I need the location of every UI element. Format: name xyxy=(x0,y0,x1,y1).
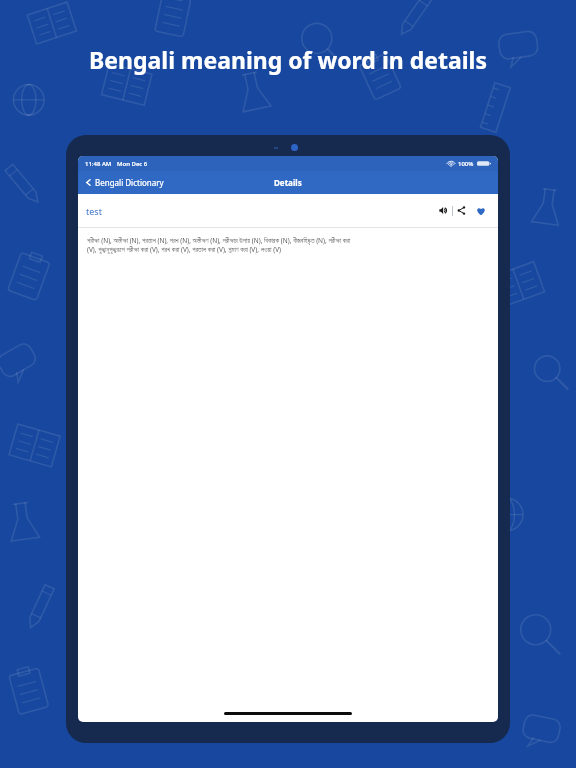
button[interactable]: Pronounce xyxy=(435,202,452,219)
staticText: Bengali Dictionary xyxy=(95,177,164,188)
staticText: Mon Dec 6 xyxy=(117,160,148,168)
staticText: 100% xyxy=(458,160,474,168)
staticText: (V), পুঙ্খানুপুঙ্খরূপে পরীক্ষা করা (V), … xyxy=(87,245,281,254)
staticText: পরীক্ষা (N), অভীক্ষা (N), পরতাল (N), পরখ… xyxy=(87,236,351,245)
staticText: test xyxy=(86,205,102,217)
button[interactable]: Favorite xyxy=(472,202,490,220)
button[interactable]: Bengali Dictionary xyxy=(78,173,172,192)
staticText: Bengali meaning of word in details xyxy=(89,44,487,75)
staticText: 11:48 AM xyxy=(85,160,112,168)
staticText: Details xyxy=(274,177,302,188)
button[interactable]: Share xyxy=(453,202,470,219)
